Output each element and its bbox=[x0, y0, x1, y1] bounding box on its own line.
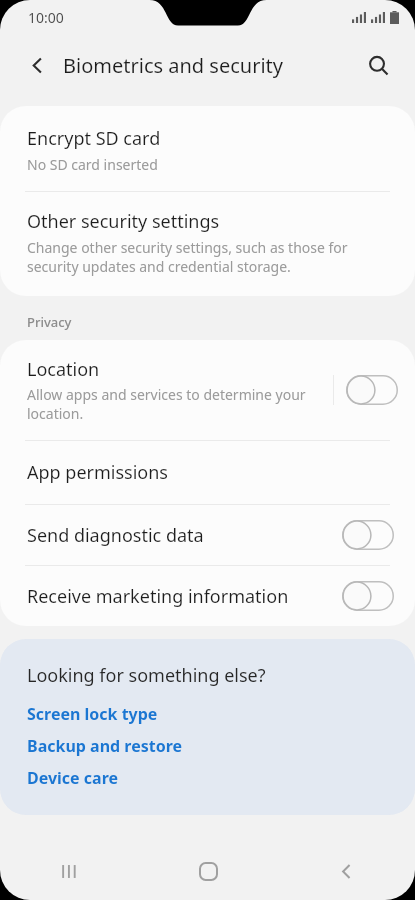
button[interactable]: Screen lock type bbox=[27, 703, 158, 725]
staticText: Backup and restore bbox=[27, 735, 183, 757]
staticText: Receive marketing information bbox=[27, 584, 342, 609]
staticText: Send diagnostic data bbox=[27, 523, 342, 548]
button[interactable]: Receive marketing information bbox=[0, 566, 415, 626]
button[interactable]: Recents bbox=[0, 842, 139, 900]
staticText: App permissions bbox=[27, 460, 168, 485]
staticText: Encrypt SD card bbox=[27, 126, 161, 151]
button[interactable]: Device care bbox=[27, 767, 119, 789]
button[interactable]: Other security settings bbox=[0, 192, 415, 296]
button[interactable]: Encrypt SD card bbox=[0, 106, 415, 191]
button[interactable]: Back bbox=[19, 47, 55, 83]
staticText: Biometrics and security bbox=[63, 52, 283, 79]
button[interactable]: Home bbox=[139, 842, 277, 900]
button[interactable]: Send diagnostic data bbox=[0, 505, 415, 565]
staticText: Other security settings bbox=[27, 209, 220, 234]
staticText: Allow apps and services to determine you… bbox=[27, 385, 321, 423]
staticText: Device care bbox=[27, 767, 119, 789]
staticText: Change other security settings, such as … bbox=[27, 238, 388, 276]
button[interactable]: Location toggle bbox=[346, 375, 398, 405]
staticText: No SD card inserted bbox=[27, 155, 158, 174]
staticText: Looking for something else? bbox=[27, 663, 266, 688]
button[interactable]: Backup and restore bbox=[27, 735, 183, 757]
staticText: Privacy bbox=[27, 313, 72, 331]
button[interactable]: Location bbox=[0, 340, 415, 440]
button[interactable]: Search bbox=[359, 46, 397, 84]
button[interactable]: App permissions bbox=[0, 441, 415, 504]
staticText: Location bbox=[27, 357, 100, 382]
button[interactable]: Back bbox=[277, 842, 415, 900]
staticText: 10:00 bbox=[28, 8, 64, 27]
staticText: Screen lock type bbox=[27, 703, 158, 725]
